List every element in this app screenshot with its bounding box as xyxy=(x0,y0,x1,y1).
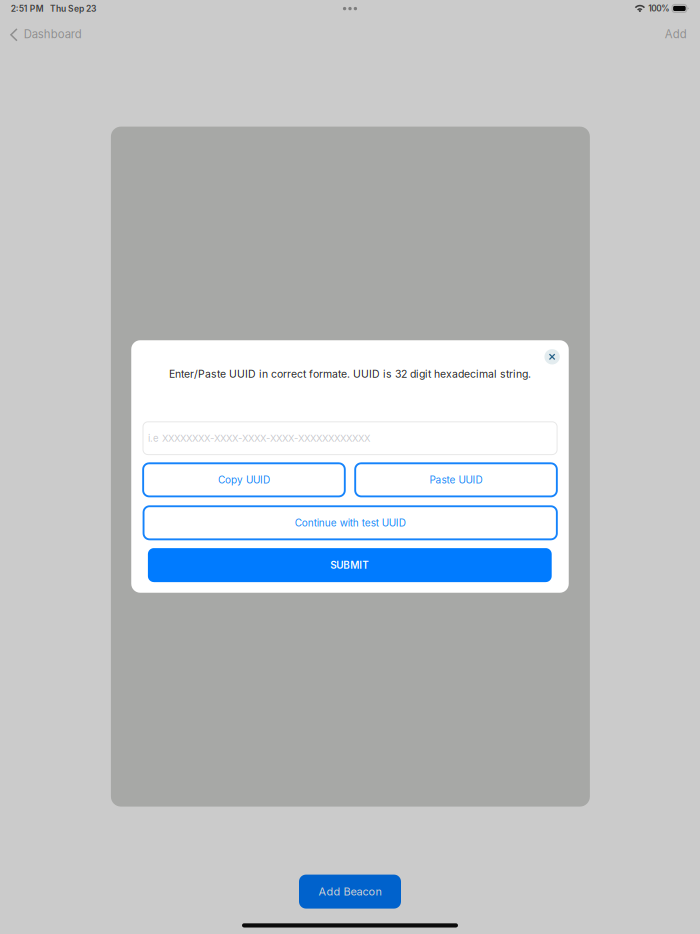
staticText: Thu Sep 23 xyxy=(50,3,96,14)
button[interactable]: Paste UUID xyxy=(355,463,557,496)
button[interactable]: Continue with test UUID xyxy=(143,506,557,539)
staticText: Dashboard xyxy=(24,27,82,41)
staticText: Continue with test UUID xyxy=(295,517,406,529)
staticText: Add xyxy=(665,27,687,41)
staticText: i.e XXXXXXXX-XXXX-XXXX-XXXX-XXXXXXXXXXXX xyxy=(148,432,370,444)
staticText: 2:51 PM xyxy=(11,3,44,14)
staticText: Enter/Paste UUID in correct formate. UUI… xyxy=(169,367,531,380)
staticText: Add Beacon xyxy=(318,885,381,898)
button[interactable]: Copy UUID xyxy=(143,463,345,496)
button[interactable]: Add xyxy=(665,21,687,47)
staticText: 100% xyxy=(648,3,669,13)
staticText: SUBMIT xyxy=(330,559,369,571)
button[interactable]: Add Beacon xyxy=(299,875,401,909)
staticText: Copy UUID xyxy=(218,474,270,486)
button[interactable]: i.e XXXXXXXX-XXXX-XXXX-XXXX-XXXXXXXXXXXX xyxy=(143,422,557,455)
button[interactable]: Close xyxy=(544,349,560,364)
button[interactable]: SUBMIT xyxy=(148,548,552,582)
button[interactable]: Dashboard xyxy=(10,21,82,47)
staticText: Paste UUID xyxy=(429,474,482,486)
